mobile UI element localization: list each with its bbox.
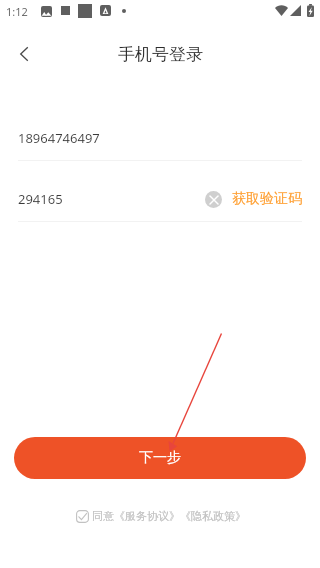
button[interactable]: 294165 — [18, 190, 205, 208]
staticText: 294165 — [18, 190, 63, 208]
button[interactable]: 下一步 — [14, 437, 306, 479]
staticText: 手机号登录 — [118, 44, 203, 65]
button[interactable]: 18964746497 — [18, 120, 302, 156]
button[interactable]: Clear — [205, 191, 222, 208]
staticText: 18964746497 — [18, 129, 100, 147]
button[interactable]: 同意《服务协议》《隐私政策》 — [76, 509, 246, 523]
staticText: 1:12 — [6, 4, 28, 19]
button[interactable]: Back — [2, 32, 46, 76]
staticText: 获取验证码 — [232, 190, 302, 208]
button[interactable]: 获取验证码 — [232, 190, 302, 208]
staticText: 下一步 — [139, 449, 181, 467]
staticText: 同意《服务协议》《隐私政策》 — [92, 509, 246, 523]
